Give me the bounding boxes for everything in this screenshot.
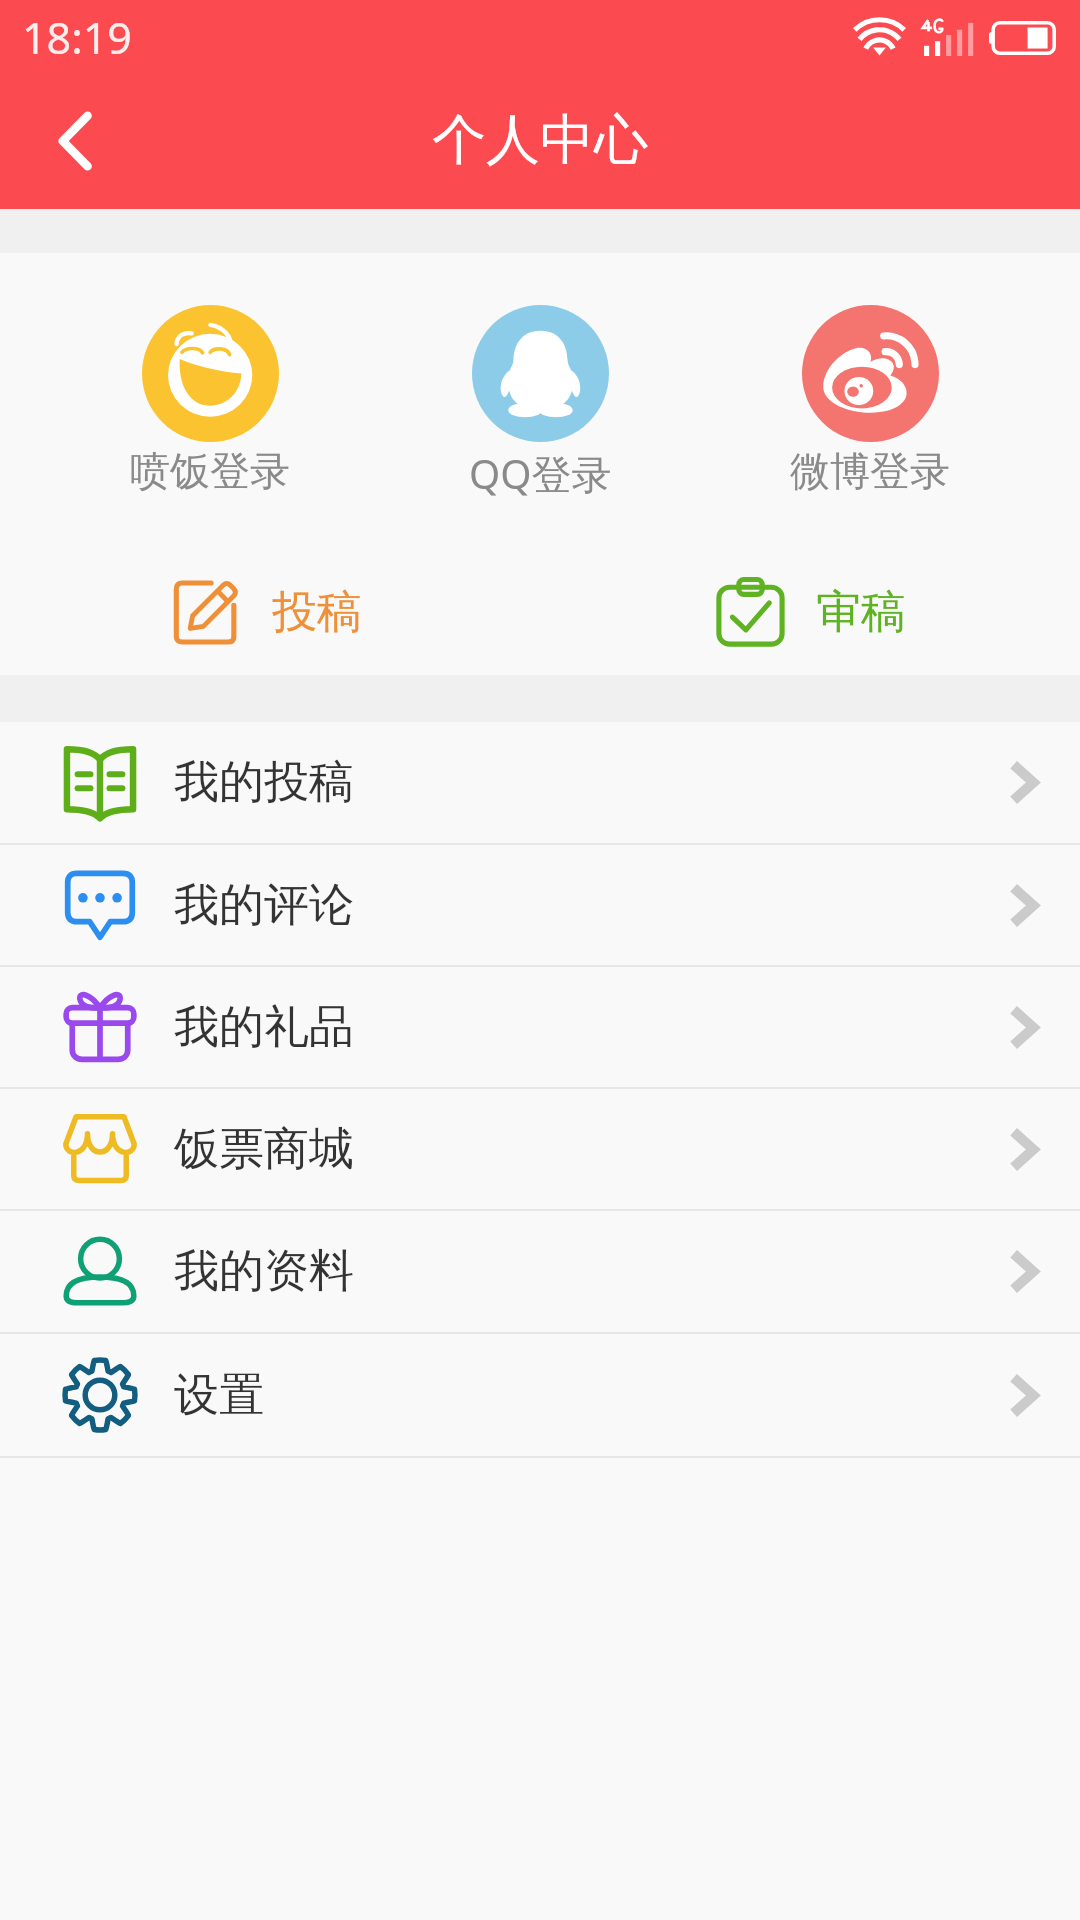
button[interactable]: 我的礼品 [0, 967, 1080, 1087]
button[interactable]: Back [20, 86, 130, 196]
button[interactable]: 微博登录 [760, 305, 980, 496]
staticText: 我的礼品 [174, 999, 354, 1056]
staticText: 设置 [174, 1367, 264, 1424]
button[interactable]: QQ登录 [430, 305, 650, 501]
staticText: 我的评论 [174, 877, 354, 934]
staticText: 18:19 [22, 8, 132, 67]
staticText: 投稿 [272, 584, 362, 641]
button[interactable]: 我的资料 [0, 1211, 1080, 1332]
staticText: 个人中心 [432, 106, 648, 174]
staticText: QQ登录 [469, 446, 612, 501]
button[interactable]: 我的评论 [0, 845, 1080, 965]
button[interactable]: 设置 [0, 1334, 1080, 1456]
button[interactable]: 喷饭登录 [100, 305, 320, 496]
button[interactable]: 饭票商城 [0, 1089, 1080, 1209]
staticText: 审稿 [816, 584, 906, 641]
staticText: 我的投稿 [174, 754, 354, 811]
staticText: 我的资料 [174, 1243, 354, 1300]
button[interactable]: 审稿 [699, 569, 922, 656]
staticText: 喷饭登录 [130, 446, 290, 496]
button[interactable]: 投稿 [155, 569, 378, 656]
staticText: 微博登录 [790, 446, 950, 496]
staticText: 饭票商城 [174, 1121, 354, 1178]
button[interactable]: 我的投稿 [0, 722, 1080, 843]
